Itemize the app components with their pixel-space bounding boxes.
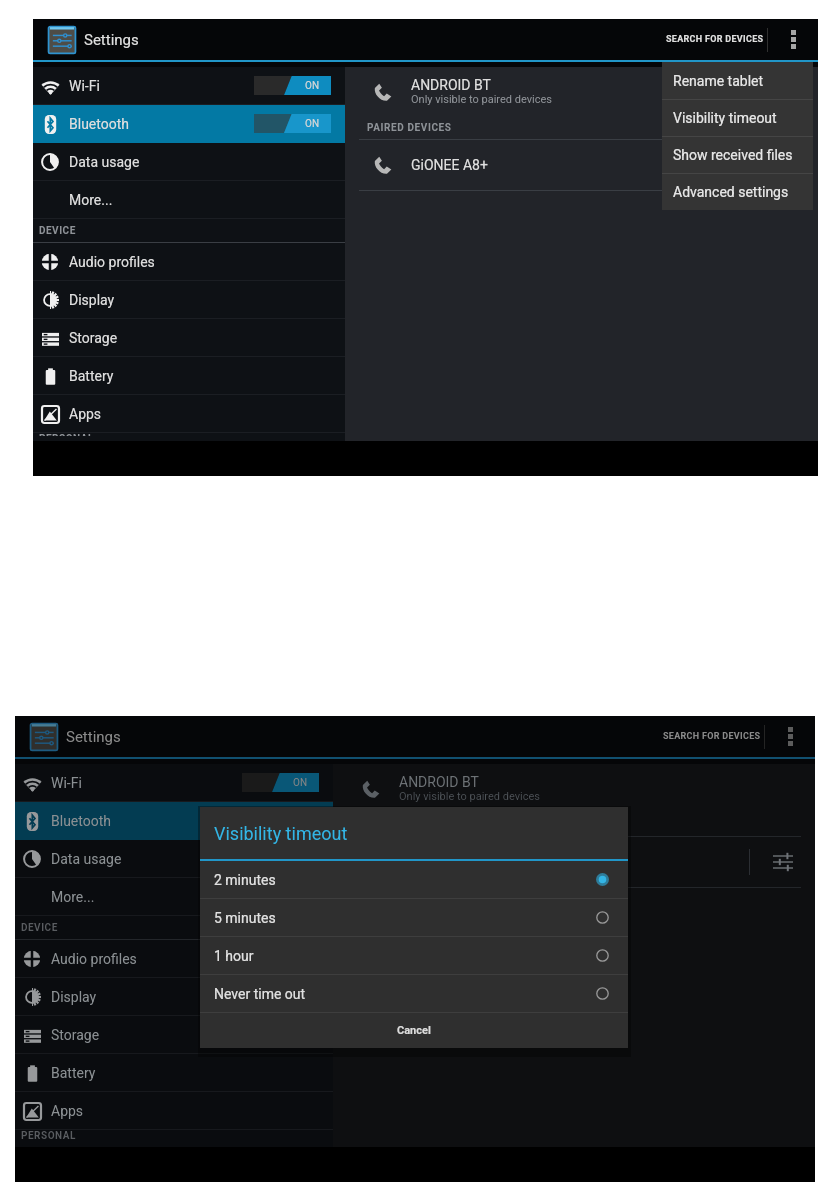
staticText: Show received files bbox=[673, 147, 793, 163]
staticText: SEARCH FOR DEVICES bbox=[663, 731, 761, 742]
button[interactable]: Bluetooth bbox=[33, 105, 345, 142]
staticText: Only visible to paired devices bbox=[411, 93, 552, 106]
button[interactable]: Storage bbox=[33, 319, 345, 356]
staticText: Advanced settings bbox=[673, 184, 789, 200]
button[interactable]: Data usage bbox=[33, 143, 345, 180]
button[interactable]: Storage bbox=[15, 1016, 333, 1053]
button[interactable]: Wi-Fi bbox=[15, 764, 333, 801]
staticText: Bluetooth bbox=[69, 116, 129, 132]
staticText: Audio profiles bbox=[51, 951, 137, 967]
staticText: GiONEE A8+ bbox=[411, 157, 488, 173]
staticText: Display bbox=[69, 292, 115, 308]
staticText: Apps bbox=[69, 406, 102, 422]
staticText: 5 minutes bbox=[214, 910, 276, 926]
button[interactable]: ANDROID BT bbox=[333, 764, 815, 813]
button[interactable]: Show received files bbox=[662, 137, 813, 173]
staticText: Storage bbox=[69, 330, 118, 346]
button[interactable]: ANDROID BT bbox=[345, 67, 818, 116]
button[interactable]: ON bbox=[254, 114, 331, 133]
staticText: DEVICE bbox=[39, 225, 76, 237]
staticText: Cancel bbox=[397, 1024, 431, 1037]
staticText: Audio profiles bbox=[69, 254, 155, 270]
staticText: DEVICE bbox=[21, 922, 58, 934]
staticText: Display bbox=[51, 989, 97, 1005]
button[interactable]: Never time out bbox=[200, 975, 628, 1012]
staticText: Settings bbox=[66, 728, 121, 746]
button[interactable]: Battery bbox=[33, 357, 345, 394]
button[interactable]: Battery bbox=[15, 1054, 333, 1091]
staticText: Wi-Fi bbox=[69, 78, 100, 94]
staticText: Never time out bbox=[214, 986, 306, 1002]
staticText: ON bbox=[305, 118, 320, 130]
button[interactable]: Rename tablet bbox=[662, 62, 813, 99]
button[interactable]: Wi-Fi bbox=[33, 67, 345, 104]
button[interactable]: Device settings bbox=[750, 837, 815, 887]
button[interactable]: More... bbox=[33, 181, 345, 218]
button[interactable]: 5 minutes bbox=[200, 899, 628, 936]
button[interactable]: Advanced settings bbox=[662, 174, 813, 210]
staticText: Bluetooth bbox=[51, 813, 111, 829]
staticText: Data usage bbox=[51, 851, 122, 867]
button[interactable]: Bluetooth bbox=[15, 802, 333, 839]
button[interactable]: Display bbox=[15, 978, 333, 1015]
staticText: Storage bbox=[51, 1027, 100, 1043]
button[interactable]: 1 hour bbox=[200, 937, 628, 974]
staticText: Data usage bbox=[69, 154, 140, 170]
button[interactable]: SEARCH FOR DEVICES bbox=[657, 721, 763, 752]
button[interactable]: Cancel bbox=[200, 1013, 628, 1048]
button[interactable]: SEARCH FOR DEVICES bbox=[660, 24, 766, 55]
button[interactable]: Apps bbox=[33, 395, 345, 432]
staticText: Only visible to paired devices bbox=[399, 790, 540, 803]
staticText: More... bbox=[51, 889, 95, 905]
staticText: PERSONAL bbox=[39, 433, 94, 436]
button[interactable]: Visibility timeout bbox=[662, 100, 813, 136]
staticText: Battery bbox=[51, 1065, 96, 1081]
staticText: Visibility timeout bbox=[673, 110, 777, 126]
button[interactable]: ON bbox=[254, 76, 331, 95]
button[interactable]: 2 minutes bbox=[200, 861, 628, 898]
staticText: PERSONAL bbox=[21, 1130, 76, 1142]
button[interactable]: ON bbox=[242, 773, 319, 792]
button[interactable]: Display bbox=[33, 281, 345, 318]
button[interactable]: Apps bbox=[15, 1092, 333, 1129]
staticText: Rename tablet bbox=[673, 73, 764, 89]
button[interactable]: Audio profiles bbox=[33, 243, 345, 280]
button[interactable]: Audio profiles bbox=[15, 940, 333, 977]
staticText: ON bbox=[293, 777, 308, 789]
staticText: 1 hour bbox=[214, 948, 254, 964]
button[interactable]: GiONEE A8+ bbox=[345, 140, 818, 190]
button[interactable]: More options bbox=[768, 19, 818, 60]
staticText: GiONEE A8+ bbox=[399, 854, 476, 870]
button[interactable]: GiONEE A8+ bbox=[333, 837, 815, 887]
staticText: Settings bbox=[84, 31, 139, 49]
staticText: ON bbox=[305, 80, 320, 92]
button[interactable]: More options bbox=[765, 716, 815, 757]
button[interactable]: ON bbox=[242, 811, 319, 830]
staticText: SEARCH FOR DEVICES bbox=[666, 34, 764, 45]
staticText: ANDROID BT bbox=[411, 77, 491, 93]
button[interactable]: Data usage bbox=[15, 840, 333, 877]
button[interactable]: More... bbox=[15, 878, 333, 915]
staticText: ANDROID BT bbox=[399, 774, 479, 790]
staticText: 2 minutes bbox=[214, 872, 276, 888]
staticText: Apps bbox=[51, 1103, 84, 1119]
staticText: PAIRED DEVICES bbox=[367, 122, 452, 134]
staticText: Visibility timeout bbox=[214, 823, 348, 844]
staticText: More... bbox=[69, 192, 113, 208]
staticText: Wi-Fi bbox=[51, 775, 82, 791]
staticText: Battery bbox=[69, 368, 114, 384]
